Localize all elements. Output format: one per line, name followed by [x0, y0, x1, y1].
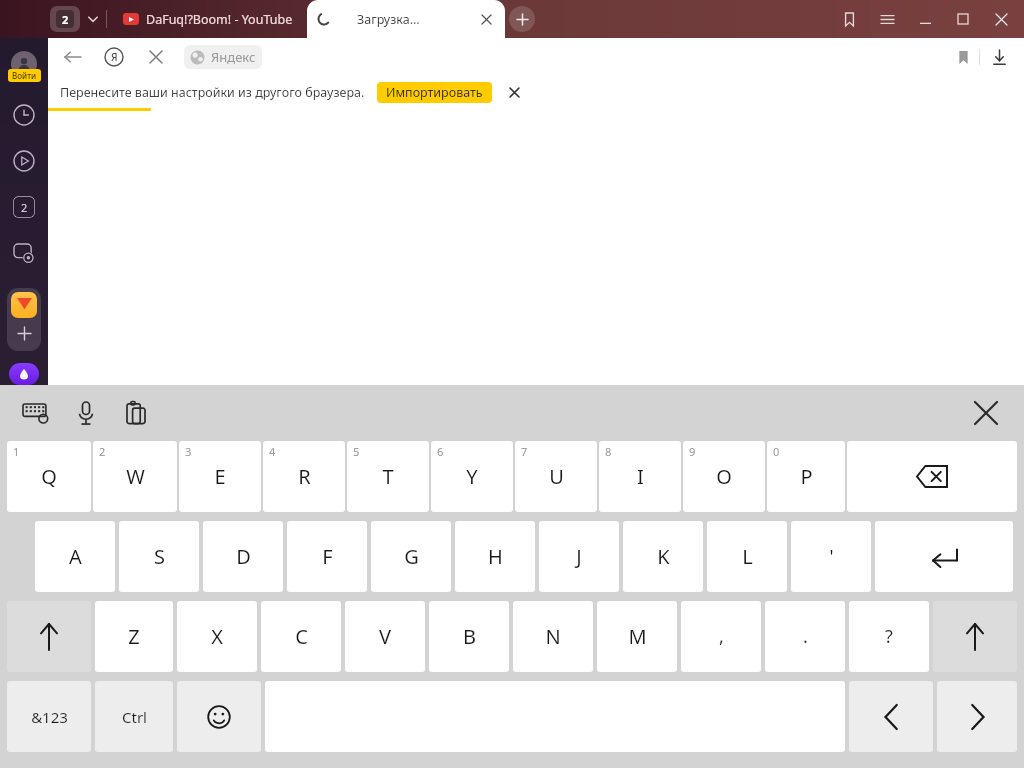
staticText: Y [466, 463, 478, 490]
button[interactable]: C [261, 601, 341, 672]
staticText: Войти [12, 70, 37, 81]
staticText: Q [41, 463, 57, 490]
button[interactable]: B [429, 601, 509, 672]
staticText: L [742, 543, 753, 570]
staticText: C [295, 623, 308, 650]
button[interactable]: L [707, 521, 787, 592]
staticText: J [576, 543, 582, 570]
button[interactable]: Yandex home [100, 43, 128, 71]
button[interactable]: Enter [875, 521, 1013, 592]
staticText: N [545, 623, 561, 650]
staticText: ? [885, 624, 893, 649]
button[interactable]: 9 [683, 441, 765, 512]
staticText: 0 [773, 444, 780, 459]
button[interactable]: Video [7, 144, 41, 178]
button[interactable]: Add service [9, 318, 39, 348]
staticText: 4 [269, 444, 276, 459]
button[interactable]: Ctrl [95, 681, 173, 752]
staticText: 7 [521, 444, 528, 459]
staticText: W [126, 463, 145, 490]
staticText: F [322, 543, 333, 570]
staticText: Z [128, 623, 140, 650]
staticText: H [488, 543, 503, 570]
button[interactable]: 2 [50, 6, 80, 32]
button[interactable]: Z [95, 601, 173, 672]
button[interactable]: 1 [7, 441, 91, 512]
button[interactable]: H [455, 521, 535, 592]
button[interactable]: DaFuq!?Boom! - YouTube [115, 3, 301, 35]
button[interactable]: ? [849, 601, 929, 672]
button[interactable]: ' [791, 521, 871, 592]
button[interactable]: Stop loading [142, 43, 170, 71]
button[interactable]: Move cursor left [849, 681, 933, 752]
button[interactable]: K [623, 521, 703, 592]
staticText: Импортировать [386, 84, 483, 101]
button[interactable]: , [681, 601, 761, 672]
button[interactable]: Hide keyboard [960, 387, 1012, 439]
button[interactable]: 8 [599, 441, 681, 512]
button[interactable]: . [765, 601, 845, 672]
staticText: 2 [62, 12, 69, 27]
button[interactable]: Backspace [847, 441, 1017, 512]
button[interactable]: Импортировать [377, 82, 492, 103]
button[interactable]: 5 [347, 441, 429, 512]
button[interactable]: Voice input [68, 395, 104, 431]
button[interactable]: M [597, 601, 677, 672]
button[interactable]: D [203, 521, 283, 592]
button[interactable]: 7 [515, 441, 597, 512]
button[interactable]: Mail [11, 292, 37, 318]
staticText: Я [111, 50, 118, 64]
button[interactable]: Bookmarks [947, 41, 979, 73]
button[interactable]: &123 [7, 681, 91, 752]
button[interactable]: 3 [179, 441, 261, 512]
staticText: 8 [605, 444, 612, 459]
button[interactable]: S [119, 521, 199, 592]
staticText: 3 [185, 444, 192, 459]
button[interactable]: A [35, 521, 115, 592]
button[interactable]: Загрузка... [307, 0, 505, 38]
button[interactable]: J [539, 521, 619, 592]
button[interactable]: Яндекс [184, 45, 262, 69]
button[interactable]: 0 [767, 441, 845, 512]
button[interactable]: Shift [933, 601, 1017, 672]
button[interactable]: N [513, 601, 593, 672]
button[interactable]: Move cursor right [937, 681, 1017, 752]
button[interactable]: Account [2, 42, 46, 86]
staticText: V [379, 623, 391, 650]
button[interactable]: X [177, 601, 257, 672]
button[interactable]: New tab [505, 2, 539, 36]
staticText: 9 [689, 444, 696, 459]
button[interactable]: Tabs [7, 190, 41, 224]
button[interactable]: Menu [868, 0, 906, 38]
staticText: , [719, 624, 724, 649]
staticText: I [637, 463, 644, 490]
button[interactable]: 2 [93, 441, 177, 512]
button[interactable]: Close [982, 0, 1020, 38]
staticText: 5 [353, 444, 360, 459]
button[interactable]: G [371, 521, 451, 592]
staticText: T [382, 463, 394, 490]
button[interactable]: Shift [7, 601, 91, 672]
button[interactable]: 6 [431, 441, 513, 512]
button[interactable]: Collections [830, 0, 868, 38]
button[interactable]: 4 [263, 441, 345, 512]
button[interactable]: Minimize [906, 0, 944, 38]
button[interactable]: Screenshot [7, 236, 41, 270]
button[interactable]: Alice assistant [9, 363, 39, 385]
button[interactable]: Clipboard [118, 395, 154, 431]
button[interactable]: Tab list [80, 6, 106, 32]
button[interactable]: Maximize [944, 0, 982, 38]
staticText: G [404, 543, 419, 570]
staticText: O [716, 463, 732, 490]
staticText: Ctrl [122, 707, 147, 727]
button[interactable]: Emoji [177, 681, 261, 752]
button[interactable]: F [287, 521, 367, 592]
button[interactable]: History [7, 98, 41, 132]
button[interactable]: Downloads [980, 38, 1018, 76]
button[interactable]: Back [58, 42, 88, 72]
button[interactable]: Close tab [473, 6, 499, 32]
button[interactable]: Keyboard settings [18, 395, 54, 431]
button[interactable]: Dismiss [502, 80, 526, 104]
button[interactable]: V [345, 601, 425, 672]
